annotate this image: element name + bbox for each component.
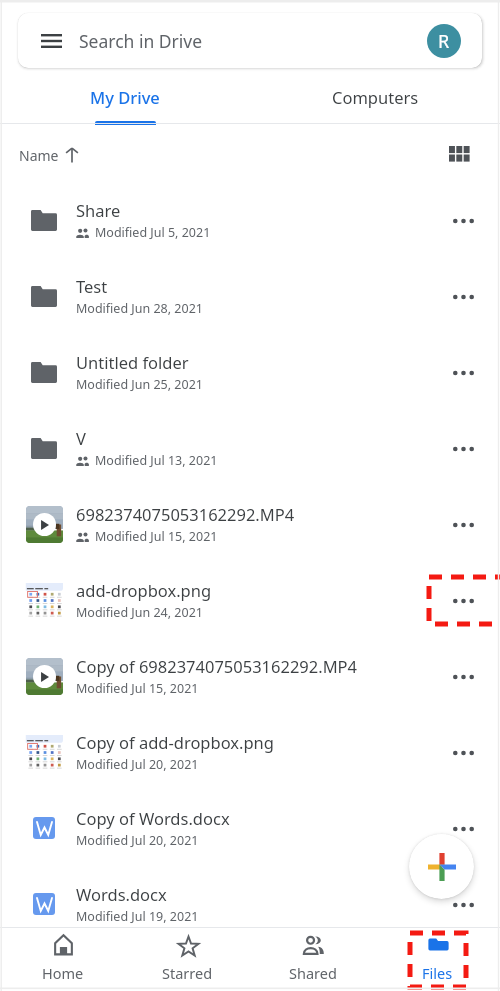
staticText: Modified Jul 20, 2021 bbox=[76, 832, 199, 849]
staticText: Computers bbox=[332, 86, 419, 108]
staticText: Copy of Words.docx bbox=[76, 807, 230, 829]
button[interactable]: Open navigation drawer bbox=[18, 13, 482, 68]
staticText: Modified Jul 13, 2021 bbox=[95, 452, 218, 469]
button[interactable]: add-dropbox.png bbox=[0, 562, 500, 638]
button[interactable]: Copy of 6982374075053162292.MP4 bbox=[0, 638, 500, 714]
button[interactable]: Starred bbox=[125, 928, 250, 991]
button[interactable]: Share bbox=[0, 182, 500, 258]
button[interactable]: Shared bbox=[250, 928, 375, 991]
button[interactable]: Home bbox=[0, 928, 125, 991]
staticText: Copy of add-dropbox.png bbox=[76, 731, 274, 753]
button[interactable]: Words.docx bbox=[0, 866, 500, 942]
staticText: V bbox=[76, 427, 86, 449]
button[interactable]: 6982374075053162292.MP4 bbox=[0, 486, 500, 562]
button[interactable]: Test bbox=[0, 258, 500, 334]
staticText: Starred bbox=[162, 963, 213, 983]
button[interactable]: Copy of add-dropbox.png bbox=[0, 714, 500, 790]
staticText: Untitled folder bbox=[76, 351, 189, 373]
button[interactable]: My Drive bbox=[0, 82, 250, 124]
staticText: Share bbox=[76, 199, 121, 221]
button[interactable]: Files bbox=[375, 928, 500, 991]
button[interactable]: Account bbox=[427, 24, 461, 58]
button[interactable]: Create new bbox=[409, 834, 474, 899]
staticText: Modified Jun 24, 2021 bbox=[76, 604, 203, 621]
button[interactable]: More options bbox=[426, 866, 500, 942]
staticText: Shared bbox=[289, 963, 337, 983]
button[interactable]: More options bbox=[426, 562, 500, 638]
staticText: Copy of 6982374075053162292.MP4 bbox=[76, 655, 358, 677]
button[interactable]: More options bbox=[426, 486, 500, 562]
button[interactable]: More options bbox=[426, 410, 500, 486]
button[interactable]: More options bbox=[426, 334, 500, 410]
button[interactable]: More options bbox=[426, 638, 500, 714]
staticText: add-dropbox.png bbox=[76, 579, 212, 601]
staticText: R bbox=[438, 29, 450, 54]
button[interactable]: More options bbox=[426, 714, 500, 790]
staticText: Modified Jul 5, 2021 bbox=[95, 224, 211, 241]
staticText: Modified Jul 15, 2021 bbox=[95, 528, 218, 545]
button[interactable]: Copy of Words.docx bbox=[0, 790, 500, 866]
staticText: Modified Jul 15, 2021 bbox=[76, 680, 199, 697]
button[interactable]: More options bbox=[426, 790, 500, 866]
button[interactable]: Computers bbox=[250, 82, 500, 124]
staticText: Modified Jul 20, 2021 bbox=[76, 756, 199, 773]
other: Open navigation drawer bbox=[41, 34, 62, 48]
staticText: Modified Jun 28, 2021 bbox=[76, 300, 203, 317]
staticText: Name bbox=[19, 146, 59, 165]
staticText: Files bbox=[422, 963, 453, 983]
button[interactable]: Untitled folder bbox=[0, 334, 500, 410]
button[interactable]: More options bbox=[426, 258, 500, 334]
staticText: My Drive bbox=[90, 86, 160, 108]
staticText: Search in Drive bbox=[79, 29, 203, 53]
staticText: Home bbox=[42, 963, 84, 983]
button[interactable]: V bbox=[0, 410, 500, 486]
button[interactable]: Name bbox=[19, 137, 79, 173]
staticText: Modified Jul 19, 2021 bbox=[76, 908, 199, 925]
staticText: Modified Jun 25, 2021 bbox=[76, 376, 203, 393]
staticText: 6982374075053162292.MP4 bbox=[76, 503, 295, 525]
staticText: Test bbox=[76, 275, 108, 297]
button[interactable]: Switch to grid view bbox=[442, 136, 478, 172]
staticText: Words.docx bbox=[76, 883, 167, 905]
button[interactable]: More options bbox=[426, 182, 500, 258]
